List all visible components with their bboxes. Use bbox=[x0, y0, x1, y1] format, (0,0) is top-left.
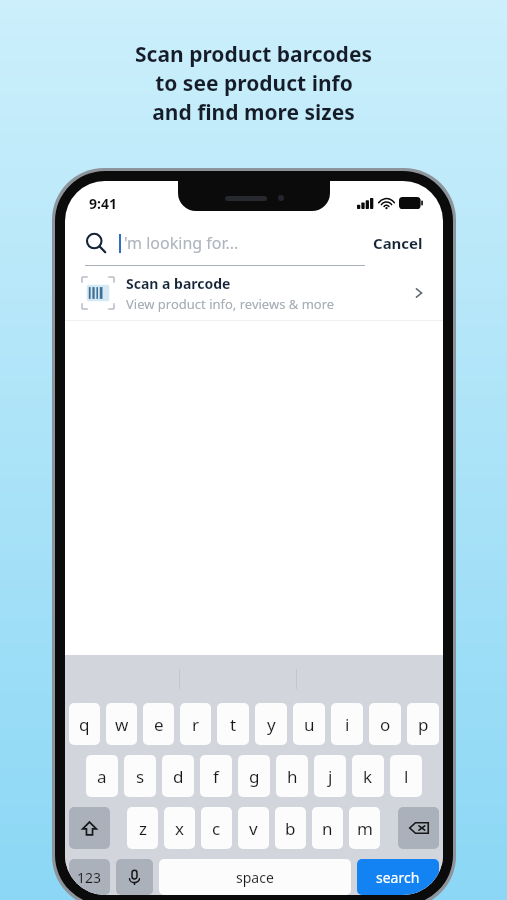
staticText: 'm looking for... bbox=[124, 232, 239, 254]
button[interactable]: t bbox=[217, 703, 249, 745]
button[interactable]: Dictate bbox=[116, 859, 153, 895]
staticText: w bbox=[115, 713, 129, 736]
staticText: q bbox=[79, 713, 90, 736]
button[interactable]: r bbox=[180, 703, 211, 745]
button[interactable]: j bbox=[314, 755, 346, 797]
staticText: e bbox=[154, 713, 164, 736]
button[interactable]: p bbox=[407, 703, 439, 745]
button[interactable]: v bbox=[238, 807, 269, 849]
staticText: r bbox=[192, 713, 200, 736]
button[interactable]: m bbox=[349, 807, 380, 849]
staticText: y bbox=[267, 713, 276, 736]
button[interactable]: a bbox=[86, 755, 118, 797]
button[interactable]: g bbox=[238, 755, 270, 797]
staticText: p bbox=[418, 713, 429, 736]
staticText: c bbox=[212, 817, 221, 840]
button[interactable]: l bbox=[390, 755, 422, 797]
staticText: n bbox=[322, 817, 333, 840]
button[interactable]: search bbox=[357, 859, 439, 895]
button[interactable]: z bbox=[127, 807, 158, 849]
button[interactable]: s bbox=[124, 755, 156, 797]
button[interactable]: u bbox=[293, 703, 325, 745]
staticText: and find more sizes bbox=[152, 98, 355, 127]
staticText: a bbox=[97, 765, 107, 788]
button[interactable]: space bbox=[159, 859, 351, 895]
staticText: d bbox=[173, 765, 184, 788]
staticText: 123 bbox=[77, 868, 102, 887]
staticText: search bbox=[376, 868, 420, 887]
staticText: m bbox=[357, 817, 373, 840]
button[interactable]: Scan a barcode bbox=[65, 266, 443, 320]
staticText: x bbox=[175, 817, 184, 840]
button[interactable]: w bbox=[106, 703, 137, 745]
staticText: Scan product barcodes bbox=[135, 40, 372, 69]
button[interactable]: x bbox=[164, 807, 195, 849]
button[interactable]: f bbox=[200, 755, 232, 797]
button[interactable]: d bbox=[162, 755, 194, 797]
button[interactable]: c bbox=[201, 807, 232, 849]
staticText: g bbox=[249, 765, 260, 788]
staticText: z bbox=[139, 817, 147, 840]
staticText: i bbox=[345, 713, 350, 736]
staticText: j bbox=[328, 765, 333, 788]
button[interactable]: 123 bbox=[69, 859, 110, 895]
button[interactable]: k bbox=[352, 755, 384, 797]
staticText: View product info, reviews & more bbox=[126, 295, 335, 313]
button[interactable]: y bbox=[255, 703, 287, 745]
button[interactable]: Backspace bbox=[398, 807, 439, 849]
button[interactable]: o bbox=[369, 703, 401, 745]
staticText: 9:41 bbox=[89, 194, 117, 213]
button[interactable]: b bbox=[275, 807, 306, 849]
staticText: h bbox=[287, 765, 298, 788]
button[interactable]: Shift bbox=[69, 807, 110, 849]
staticText: o bbox=[380, 713, 391, 736]
staticText: v bbox=[249, 817, 258, 840]
staticText: Cancel bbox=[373, 233, 423, 253]
button[interactable]: q bbox=[69, 703, 100, 745]
staticText: u bbox=[304, 713, 315, 736]
staticText: t bbox=[230, 713, 237, 736]
other: Open bbox=[411, 285, 427, 301]
staticText: to see product info bbox=[155, 69, 353, 98]
staticText: s bbox=[136, 765, 145, 788]
staticText: Scan a barcode bbox=[126, 274, 231, 293]
staticText: k bbox=[363, 765, 373, 788]
staticText: l bbox=[404, 765, 409, 788]
button[interactable]: Cancel bbox=[369, 227, 427, 259]
button[interactable]: e bbox=[143, 703, 174, 745]
button[interactable]: i bbox=[331, 703, 363, 745]
button[interactable]: n bbox=[312, 807, 343, 849]
staticText: space bbox=[236, 868, 274, 887]
staticText: b bbox=[285, 817, 296, 840]
button[interactable]: h bbox=[276, 755, 308, 797]
staticText: f bbox=[213, 765, 219, 788]
